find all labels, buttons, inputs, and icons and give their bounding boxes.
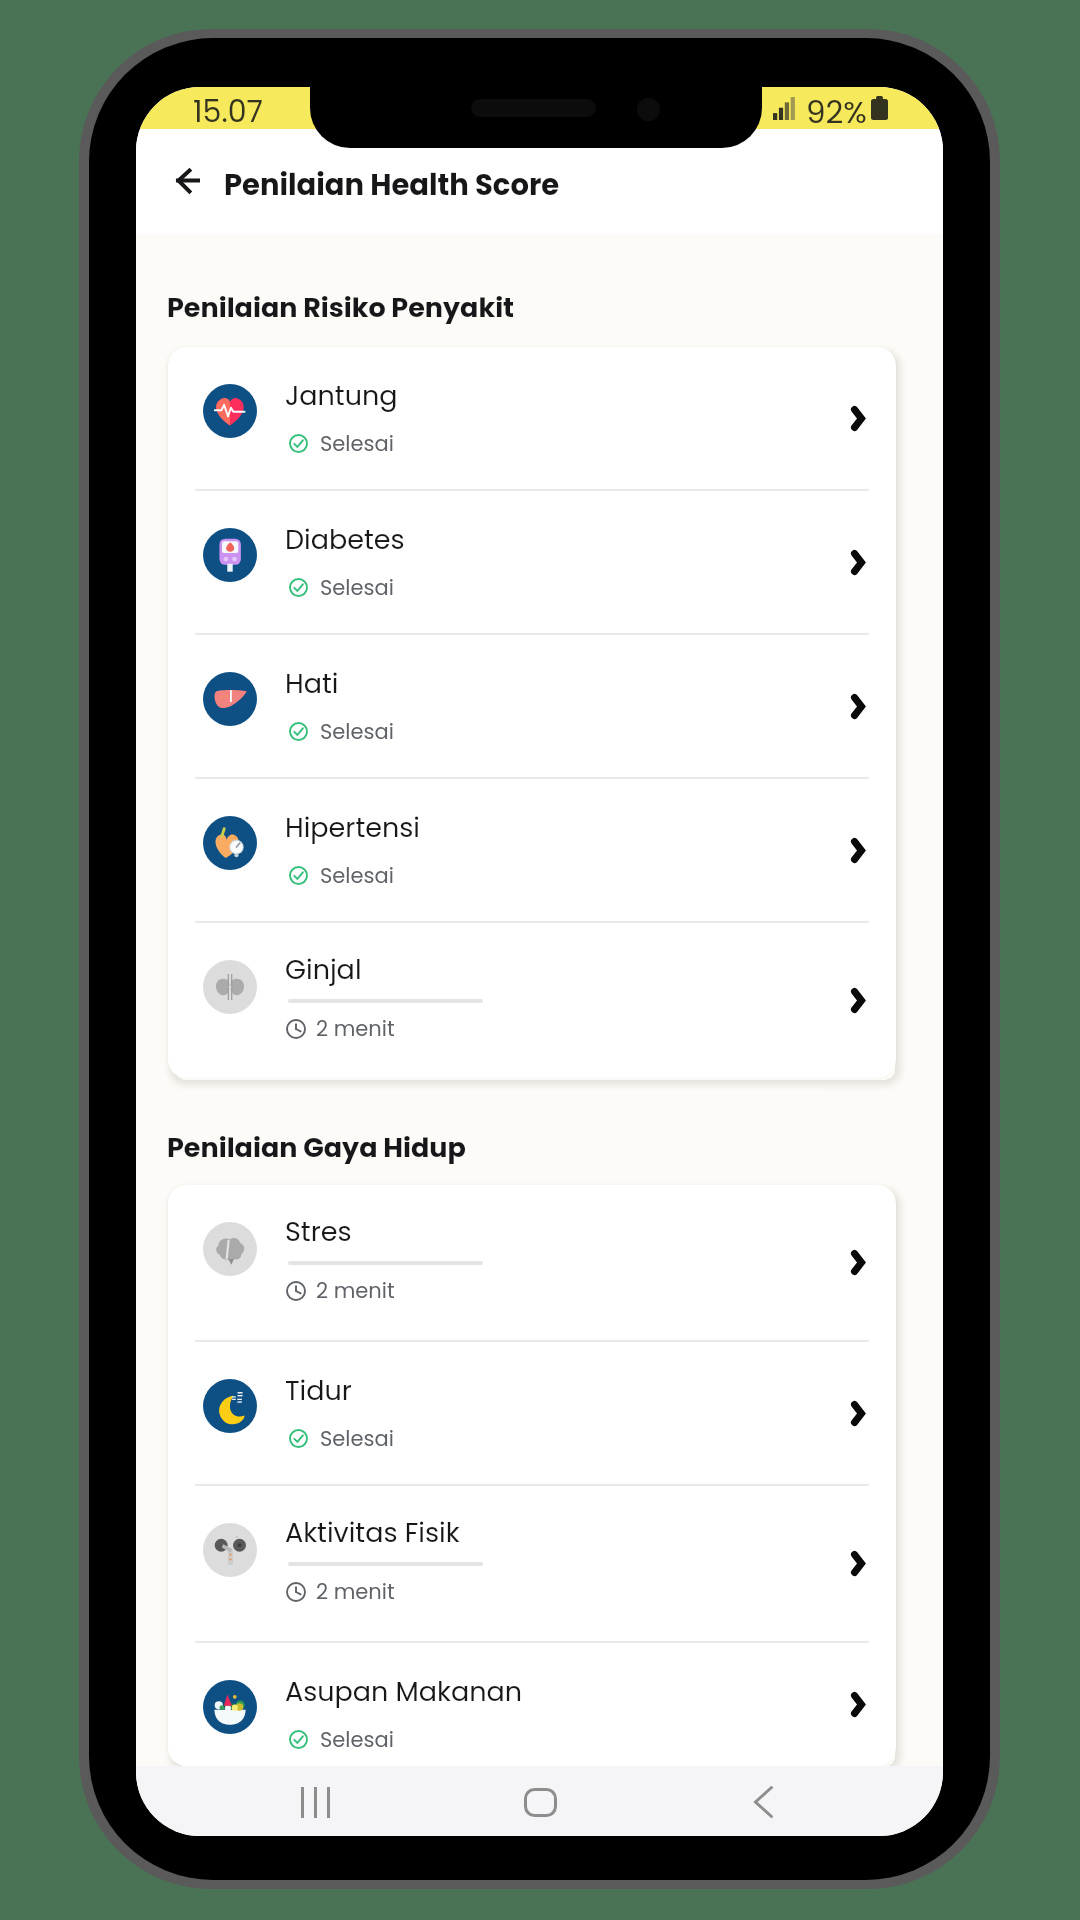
- staticText: Selesai: [320, 717, 394, 746]
- staticText: 15.07: [193, 91, 263, 133]
- button[interactable]: Hati: [168, 635, 896, 777]
- staticText: Diabetes: [285, 521, 405, 559]
- staticText: Selesai: [320, 1424, 394, 1453]
- staticText: Aktivitas Fisik: [285, 1514, 460, 1552]
- button[interactable]: Recent apps: [271, 1776, 359, 1828]
- staticText: Hipertensi: [285, 809, 420, 847]
- button[interactable]: Back: [719, 1776, 807, 1828]
- staticText: Penilaian Risiko Penyakit: [167, 289, 515, 327]
- button[interactable]: Back: [156, 149, 220, 213]
- staticText: Ginjal: [285, 951, 362, 989]
- staticText: 2 menit: [316, 1014, 395, 1043]
- staticText: Selesai: [320, 573, 394, 602]
- button[interactable]: Jantung: [168, 347, 896, 489]
- button[interactable]: Stres: [168, 1185, 896, 1340]
- button[interactable]: Ginjal: [168, 923, 896, 1078]
- button[interactable]: Hipertensi: [168, 779, 896, 921]
- button[interactable]: Home: [495, 1776, 585, 1828]
- staticText: 2 menit: [316, 1577, 395, 1606]
- staticText: Stres: [285, 1213, 352, 1251]
- button[interactable]: Asupan Makanan: [168, 1643, 896, 1766]
- button[interactable]: Diabetes: [168, 491, 896, 633]
- button[interactable]: Tidur: [168, 1342, 896, 1484]
- staticText: Tidur: [285, 1372, 352, 1410]
- staticText: Penilaian Health Score: [224, 165, 560, 206]
- staticText: Penilaian Gaya Hidup: [167, 1129, 466, 1167]
- staticText: 92%: [806, 90, 867, 132]
- button[interactable]: Aktivitas Fisik: [168, 1486, 896, 1641]
- staticText: Selesai: [320, 429, 394, 458]
- staticText: Hati: [285, 665, 339, 703]
- staticText: Selesai: [320, 1725, 394, 1754]
- staticText: Asupan Makanan: [285, 1673, 523, 1711]
- staticText: Selesai: [320, 861, 394, 890]
- staticText: Jantung: [285, 377, 398, 415]
- staticText: 2 menit: [316, 1276, 395, 1305]
